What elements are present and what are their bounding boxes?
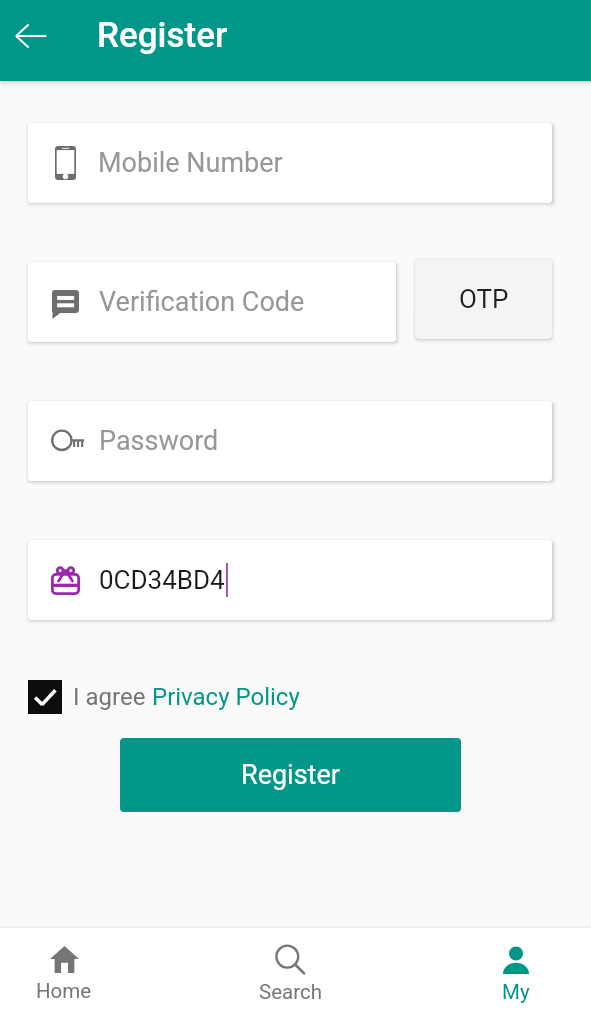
button[interactable]: Mobile Number xyxy=(28,123,552,203)
button[interactable]: Password xyxy=(28,401,552,481)
staticText: Verification Code xyxy=(99,286,305,318)
staticText: Privacy Policy xyxy=(152,683,300,711)
staticText: OTP xyxy=(459,284,509,314)
button[interactable]: Register xyxy=(120,738,461,812)
staticText: Mobile Number xyxy=(98,147,283,179)
button[interactable]: Verification Code xyxy=(28,262,396,342)
staticText: I agree xyxy=(73,683,152,711)
button[interactable]: Search xyxy=(242,928,338,1024)
staticText: Password xyxy=(99,425,219,457)
button[interactable]: OTP xyxy=(415,259,552,339)
button[interactable]: Back xyxy=(7,12,55,60)
staticText: My xyxy=(502,980,530,1004)
staticText: Register xyxy=(97,15,228,56)
staticText: 0CD34BD4 xyxy=(99,565,225,595)
button[interactable]: My xyxy=(468,928,564,1024)
staticText: Register xyxy=(241,759,340,791)
button[interactable]: I agree xyxy=(28,680,62,714)
staticText: Home xyxy=(36,979,92,1003)
button[interactable]: 0CD34BD4 xyxy=(28,540,552,620)
button[interactable]: Privacy Policy xyxy=(152,683,300,711)
staticText: Search xyxy=(259,980,322,1004)
button[interactable]: Home xyxy=(16,928,112,1024)
